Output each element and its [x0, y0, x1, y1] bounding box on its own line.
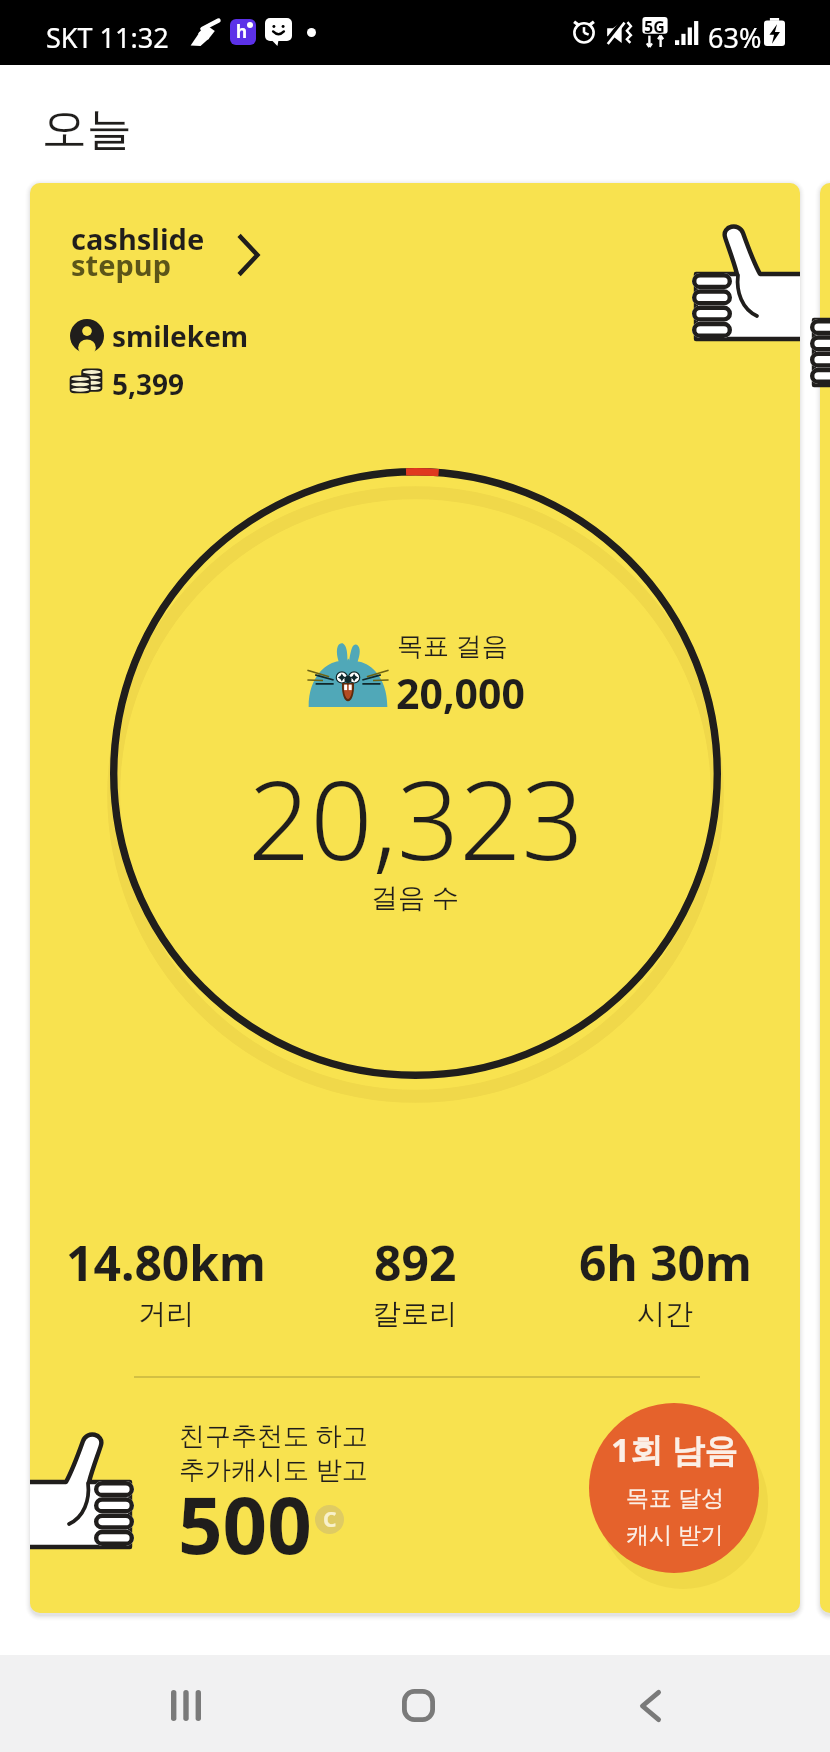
staticText: SKT 11:32	[46, 19, 169, 56]
staticText: 칼로리	[373, 1296, 457, 1331]
staticText: 오늘	[42, 101, 132, 158]
staticText: 친구추천도 하고	[179, 1417, 368, 1453]
staticText: 20,000	[396, 665, 525, 721]
staticText: h	[236, 20, 248, 43]
staticText: C	[323, 1505, 337, 1534]
staticText: stepup	[71, 245, 171, 284]
staticText: cashslide	[71, 219, 205, 258]
staticText: 6h 30m	[579, 1230, 752, 1295]
staticText: smilekem	[112, 317, 249, 355]
button[interactable]: Home	[341, 1655, 495, 1752]
staticText: 목표 걸음	[397, 627, 508, 663]
staticText: 걸음 수	[371, 878, 460, 915]
staticText: 캐시 받기	[626, 1518, 724, 1549]
staticText: 500	[178, 1471, 312, 1577]
staticText: 5G	[644, 16, 665, 38]
staticText: 목표 달성	[626, 1481, 724, 1512]
staticText: 63%	[708, 19, 762, 56]
staticText: 거리	[138, 1296, 194, 1331]
staticText: 892	[374, 1230, 457, 1295]
staticText: 5,399	[112, 365, 185, 403]
staticText: 추가캐시도 받고	[179, 1451, 368, 1487]
staticText: 14.80km	[66, 1230, 266, 1295]
button[interactable]: Back	[574, 1655, 727, 1752]
button[interactable]: 1회 남음	[589, 1403, 759, 1573]
button[interactable]: Recent apps	[109, 1655, 262, 1752]
button[interactable]: cashslide	[30, 183, 800, 1613]
staticText: 20,323	[248, 743, 584, 891]
staticText: 1회 남음	[611, 1427, 738, 1472]
staticText: 시간	[637, 1296, 693, 1331]
